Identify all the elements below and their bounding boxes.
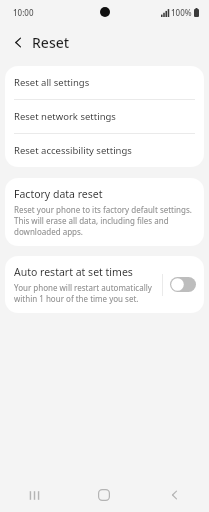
staticText: Reset (32, 33, 70, 52)
button[interactable]: Reset accessibility settings (5, 134, 204, 167)
button[interactable]: Auto restart toggle (170, 277, 196, 292)
button[interactable]: Back (6, 30, 30, 54)
staticText: Reset network settings (14, 110, 116, 123)
button[interactable]: Recent apps (0, 478, 69, 512)
staticText: Reset accessibility settings (14, 144, 132, 157)
staticText: Your phone will restart automatically wi… (14, 282, 162, 304)
button[interactable]: Factory data reset (5, 178, 204, 246)
button[interactable]: Reset network settings (5, 100, 204, 133)
staticText: 10:00 (13, 7, 34, 18)
button[interactable]: Home (69, 478, 139, 512)
staticText: Reset all settings (14, 76, 90, 89)
staticText: Auto restart at set times (14, 265, 133, 279)
staticText: Reset your phone to its factory default … (14, 204, 195, 237)
staticText: 100% (171, 7, 192, 18)
staticText: Factory data reset (14, 187, 103, 201)
button[interactable]: Reset all settings (5, 66, 204, 99)
button[interactable]: Back (139, 478, 209, 512)
button[interactable]: Auto restart at set times (5, 256, 204, 313)
